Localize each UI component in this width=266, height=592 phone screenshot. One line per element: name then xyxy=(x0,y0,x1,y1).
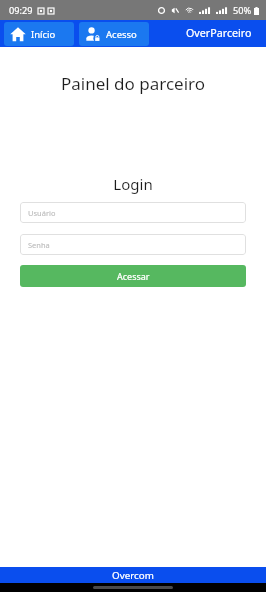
button[interactable]: Overcom xyxy=(0,567,266,583)
button[interactable]: Acessar xyxy=(20,265,246,287)
button[interactable]: Acesso xyxy=(79,22,149,46)
staticText: 09:29 xyxy=(9,4,33,17)
staticText: Painel do parceiro xyxy=(0,72,266,95)
staticText: Senha xyxy=(28,240,50,250)
staticText: Início xyxy=(31,28,56,41)
button[interactable]: Usuário xyxy=(20,202,246,223)
staticText: Acesso xyxy=(106,28,137,41)
staticText: Overcom xyxy=(112,569,154,582)
staticText: Usuário xyxy=(28,208,56,218)
button[interactable]: Home gesture bar xyxy=(93,586,173,589)
button[interactable]: Início xyxy=(4,22,74,46)
staticText: Acessar xyxy=(117,270,150,282)
staticText: 50% xyxy=(233,4,252,17)
staticText: Login xyxy=(0,174,266,194)
button[interactable]: Senha xyxy=(20,234,246,255)
staticText: OverParceiro xyxy=(186,26,252,41)
